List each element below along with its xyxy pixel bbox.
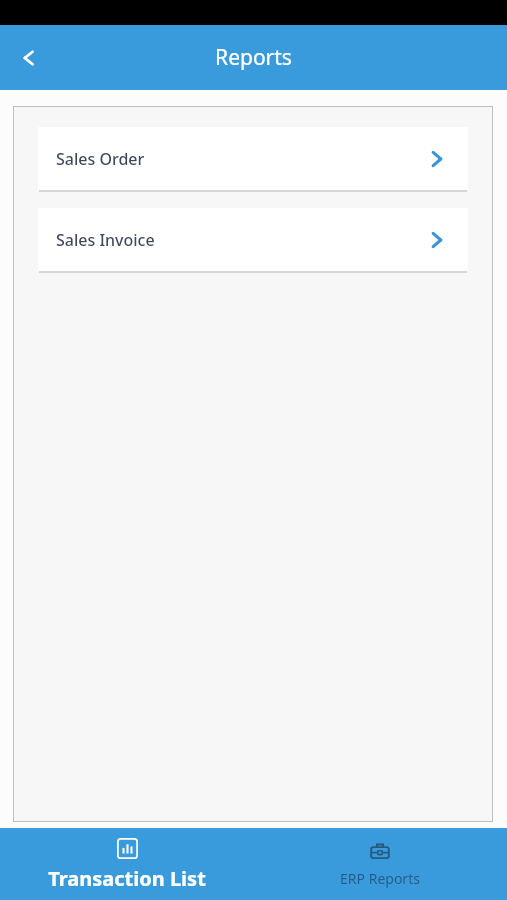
staticText: Reports	[215, 43, 292, 72]
button[interactable]: Transaction List	[0, 828, 253, 900]
button[interactable]: Back	[6, 34, 54, 82]
staticText: Transaction List	[48, 865, 206, 892]
button[interactable]: Sales Invoice	[38, 208, 468, 273]
staticText: Sales Invoice	[56, 229, 155, 251]
staticText: ERP Reports	[340, 869, 420, 888]
button[interactable]: Sales Order	[38, 127, 468, 192]
staticText: Sales Order	[56, 148, 145, 170]
button[interactable]: ERP Reports	[253, 828, 507, 900]
